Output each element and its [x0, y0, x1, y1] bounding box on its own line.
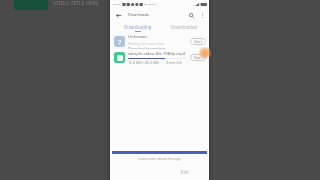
- button[interactable]: sample-video-file-1080p.mp4: [110, 50, 209, 65]
- button[interactable]: Search: [186, 10, 196, 20]
- staticText: VIDEO TITLE HERE: [53, 0, 99, 6]
- button[interactable]: Exit: [180, 168, 190, 176]
- button[interactable]: Back: [113, 10, 123, 20]
- staticText: Downloads: [128, 12, 149, 17]
- button[interactable]: Downloading: [115, 22, 161, 31]
- staticText: 12.4 MB / 85.2 MB 2 min left: [128, 60, 182, 65]
- staticText: Unknown: [128, 34, 147, 40]
- button[interactable]: Start: [190, 54, 206, 61]
- button[interactable]: Start: [190, 38, 206, 45]
- button[interactable]: ?: [110, 34, 209, 49]
- staticText: Learn more about this app: [138, 156, 181, 161]
- staticText: Download incomplete: [128, 46, 165, 49]
- staticText: sample-video-file-1080p.mp4: [128, 51, 186, 57]
- staticText: Start: [194, 55, 203, 60]
- staticText: ?: [118, 37, 122, 47]
- staticText: Exit: [181, 169, 189, 175]
- button[interactable]: More options: [198, 11, 206, 19]
- staticText: Start: [194, 39, 203, 44]
- staticText: Waiting for connection: [128, 41, 165, 46]
- staticText: Downloading: [124, 24, 152, 30]
- staticText: Downloaded: [171, 24, 198, 30]
- button[interactable]: Downloaded: [161, 22, 208, 31]
